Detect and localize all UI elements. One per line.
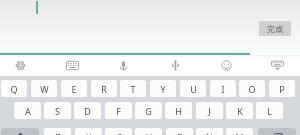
button[interactable]: Voice input	[111, 55, 135, 76]
staticText: C	[116, 131, 122, 135]
button[interactable]: Z	[44, 128, 71, 135]
button[interactable]: S	[44, 102, 71, 119]
button[interactable]: Q	[1, 80, 27, 97]
button[interactable]: K	[226, 102, 253, 119]
staticText: K	[237, 105, 243, 117]
staticText: P	[279, 83, 285, 95]
staticText: 完成	[267, 24, 283, 34]
button[interactable]: A	[14, 102, 41, 119]
button[interactable]: C	[105, 128, 132, 135]
button[interactable]: Keyboard layout	[60, 55, 84, 76]
button[interactable]: O	[239, 80, 265, 97]
staticText: J	[208, 105, 211, 117]
button[interactable]: U	[180, 80, 206, 97]
button[interactable]: M	[226, 128, 253, 135]
staticText: L	[267, 105, 272, 117]
button[interactable]: Emoji	[214, 55, 238, 76]
button[interactable]: Backspace	[258, 128, 296, 135]
button[interactable]: D	[74, 102, 101, 119]
staticText: Z	[55, 131, 61, 135]
staticText: H	[175, 105, 182, 117]
staticText: F	[116, 105, 121, 117]
staticText: I	[221, 83, 225, 95]
button[interactable]: P	[269, 80, 295, 97]
staticText: W	[40, 83, 49, 95]
button[interactable]: R	[91, 80, 117, 97]
staticText: D	[84, 105, 91, 117]
button[interactable]: J	[196, 102, 223, 119]
staticText: T	[130, 83, 136, 95]
button[interactable]: W	[31, 80, 57, 97]
staticText: A	[25, 105, 31, 117]
button[interactable]: H	[165, 102, 192, 119]
button[interactable]: N	[196, 128, 223, 135]
button[interactable]: Hide keyboard	[265, 55, 289, 76]
button[interactable]: 完成	[259, 21, 291, 36]
staticText: B	[177, 131, 183, 135]
staticText: V	[146, 131, 152, 135]
button[interactable]: F	[105, 102, 132, 119]
staticText: U	[190, 83, 197, 95]
button[interactable]: V	[135, 128, 162, 135]
staticText: G	[145, 105, 152, 117]
button[interactable]: I	[210, 80, 236, 97]
staticText: X	[86, 131, 92, 135]
staticText: Q	[10, 83, 18, 95]
staticText: O	[248, 83, 256, 95]
staticText: E	[71, 83, 77, 95]
button[interactable]: Shift	[1, 128, 39, 135]
staticText: N	[206, 131, 213, 135]
staticText: S	[55, 105, 60, 117]
staticText: M	[235, 131, 244, 135]
button[interactable]: L	[256, 102, 283, 119]
staticText: R	[101, 83, 107, 95]
button[interactable]: G	[135, 102, 162, 119]
staticText: Y	[160, 83, 166, 95]
button[interactable]: E	[61, 80, 87, 97]
button[interactable]: Y	[150, 80, 176, 97]
button[interactable]: Move cursor	[163, 55, 187, 76]
button[interactable]: B	[166, 128, 193, 135]
button[interactable]: X	[75, 128, 102, 135]
button[interactable]: T	[120, 80, 146, 97]
button[interactable]: Settings	[8, 55, 32, 76]
